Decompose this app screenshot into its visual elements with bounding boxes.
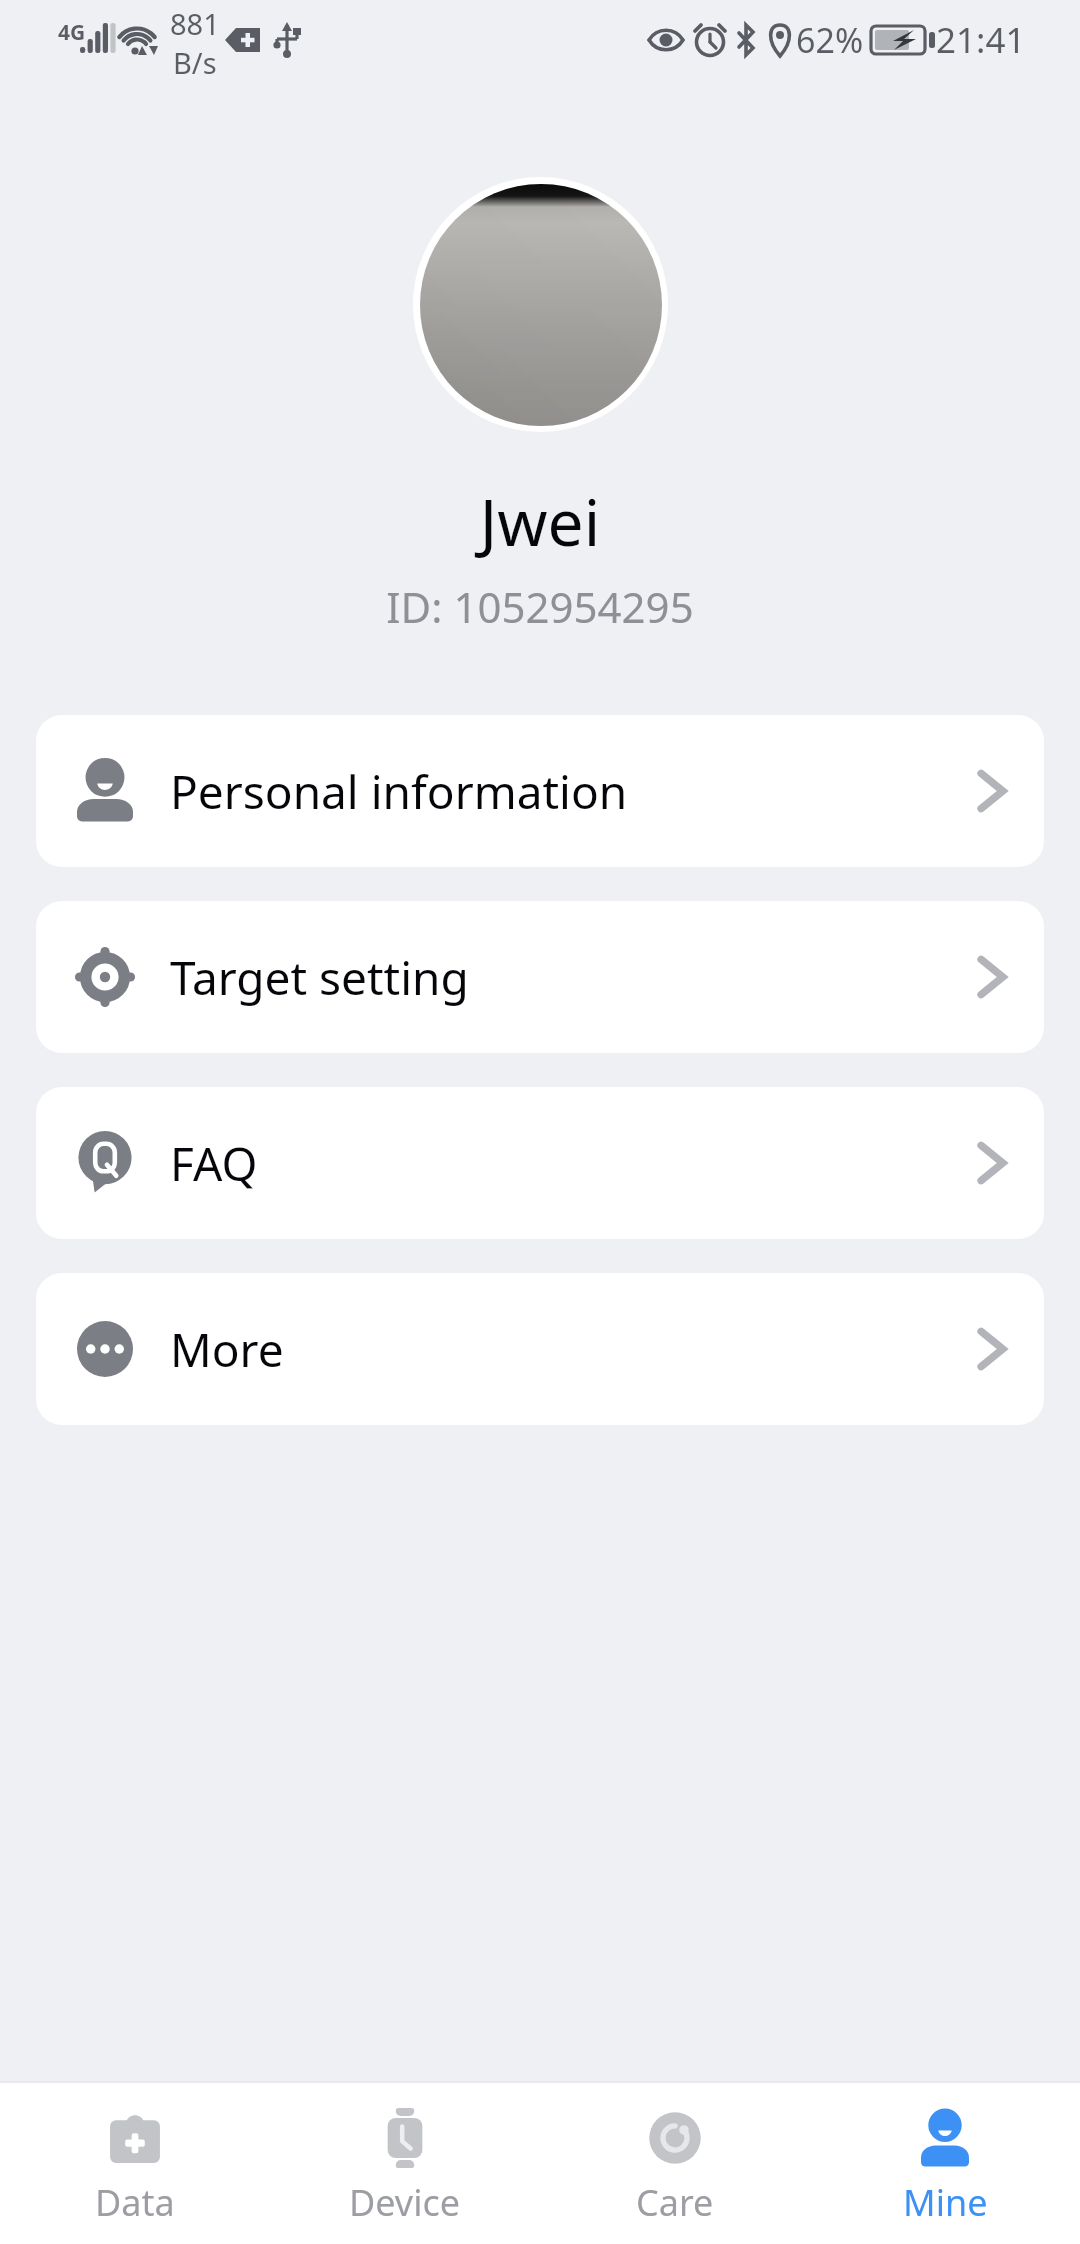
button[interactable]: Profile photo (413, 177, 668, 432)
button[interactable]: Mine (810, 2083, 1080, 2244)
staticText: B/s (173, 43, 217, 82)
staticText: Target setting (170, 946, 469, 1009)
button[interactable]: Target setting (36, 901, 1044, 1053)
button[interactable]: Data (0, 2083, 270, 2244)
staticText: 21:41 (936, 16, 1026, 64)
staticText: 62% (796, 17, 864, 63)
button[interactable]: Personal information (36, 715, 1044, 867)
staticText: Mine (903, 2178, 988, 2222)
staticText: FAQ (170, 1132, 258, 1195)
staticText: Jwei (0, 478, 1080, 565)
button[interactable]: FAQ (36, 1087, 1044, 1239)
button[interactable]: Device (270, 2083, 540, 2244)
staticText: More (170, 1318, 284, 1381)
staticText: Care (636, 2178, 714, 2222)
staticText: Device (349, 2178, 461, 2222)
button[interactable]: More (36, 1273, 1044, 1425)
staticText: Data (95, 2178, 175, 2222)
staticText: 4G (58, 18, 86, 47)
button[interactable]: Care (540, 2083, 810, 2244)
staticText: 881 (170, 4, 220, 43)
staticText: Personal information (170, 760, 628, 823)
staticText: ID: 1052954295 (0, 578, 1080, 635)
